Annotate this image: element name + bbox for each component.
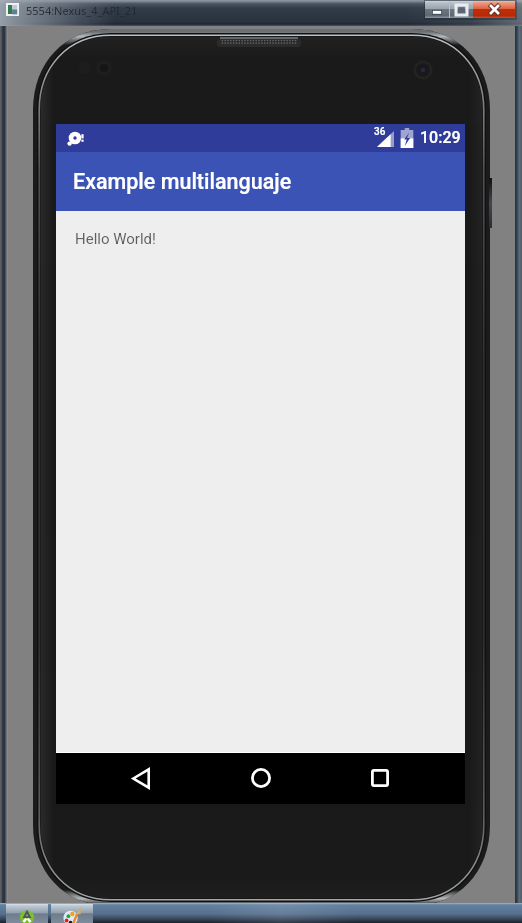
staticText: 5554:Nexus_4_API_21 bbox=[26, 3, 138, 18]
button[interactable]: Home bbox=[227, 752, 295, 804]
button[interactable]: Minimize bbox=[425, 1, 449, 18]
button[interactable]: Back bbox=[107, 752, 175, 804]
staticText: Example multilanguaje bbox=[73, 169, 292, 194]
button[interactable]: Maximize bbox=[450, 1, 473, 18]
staticText: 36 bbox=[374, 126, 386, 138]
button[interactable]: Recents bbox=[346, 752, 414, 804]
button[interactable]: Paint bbox=[51, 904, 93, 923]
staticText: Hello World! bbox=[75, 230, 156, 248]
button[interactable]: Close bbox=[473, 1, 515, 18]
button[interactable]: Android Studio bbox=[6, 904, 48, 923]
staticText: 10:29 bbox=[420, 128, 461, 147]
